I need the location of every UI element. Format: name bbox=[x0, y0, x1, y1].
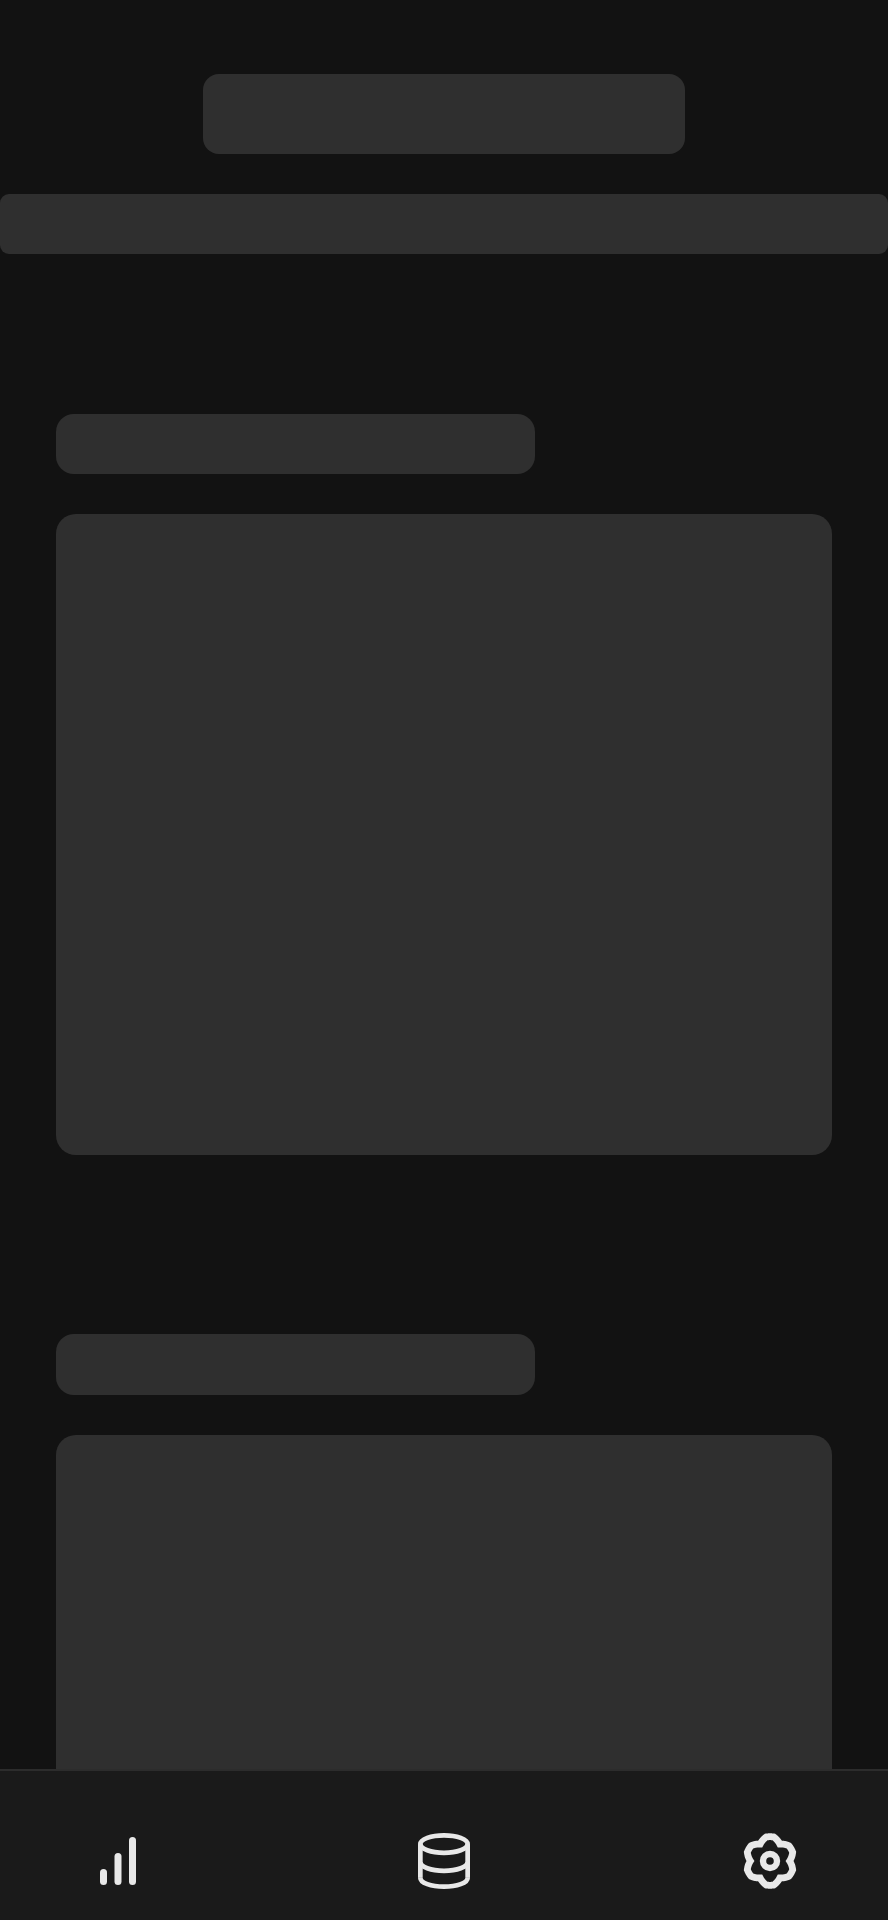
button[interactable]: Statistics bbox=[72, 1802, 164, 1920]
button[interactable]: Database bbox=[398, 1802, 490, 1920]
button[interactable]: Settings bbox=[724, 1802, 816, 1920]
